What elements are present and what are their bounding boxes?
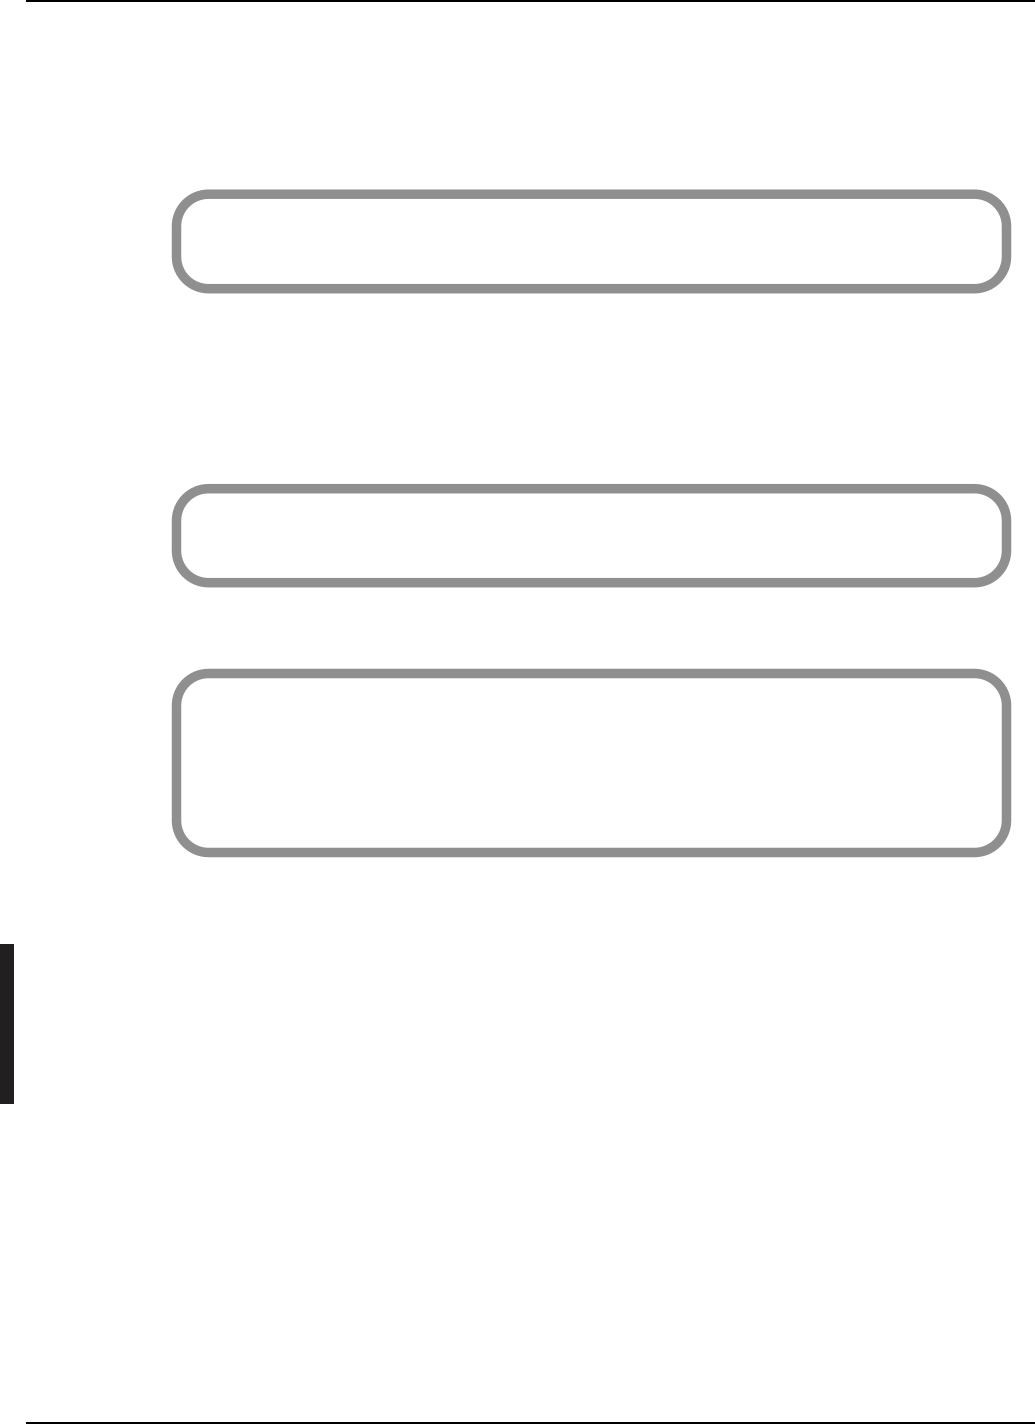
button[interactable]: Card 2 <box>176 489 1006 583</box>
button[interactable]: Card 3 <box>176 673 1006 852</box>
button[interactable]: Card 1 <box>176 194 1006 289</box>
